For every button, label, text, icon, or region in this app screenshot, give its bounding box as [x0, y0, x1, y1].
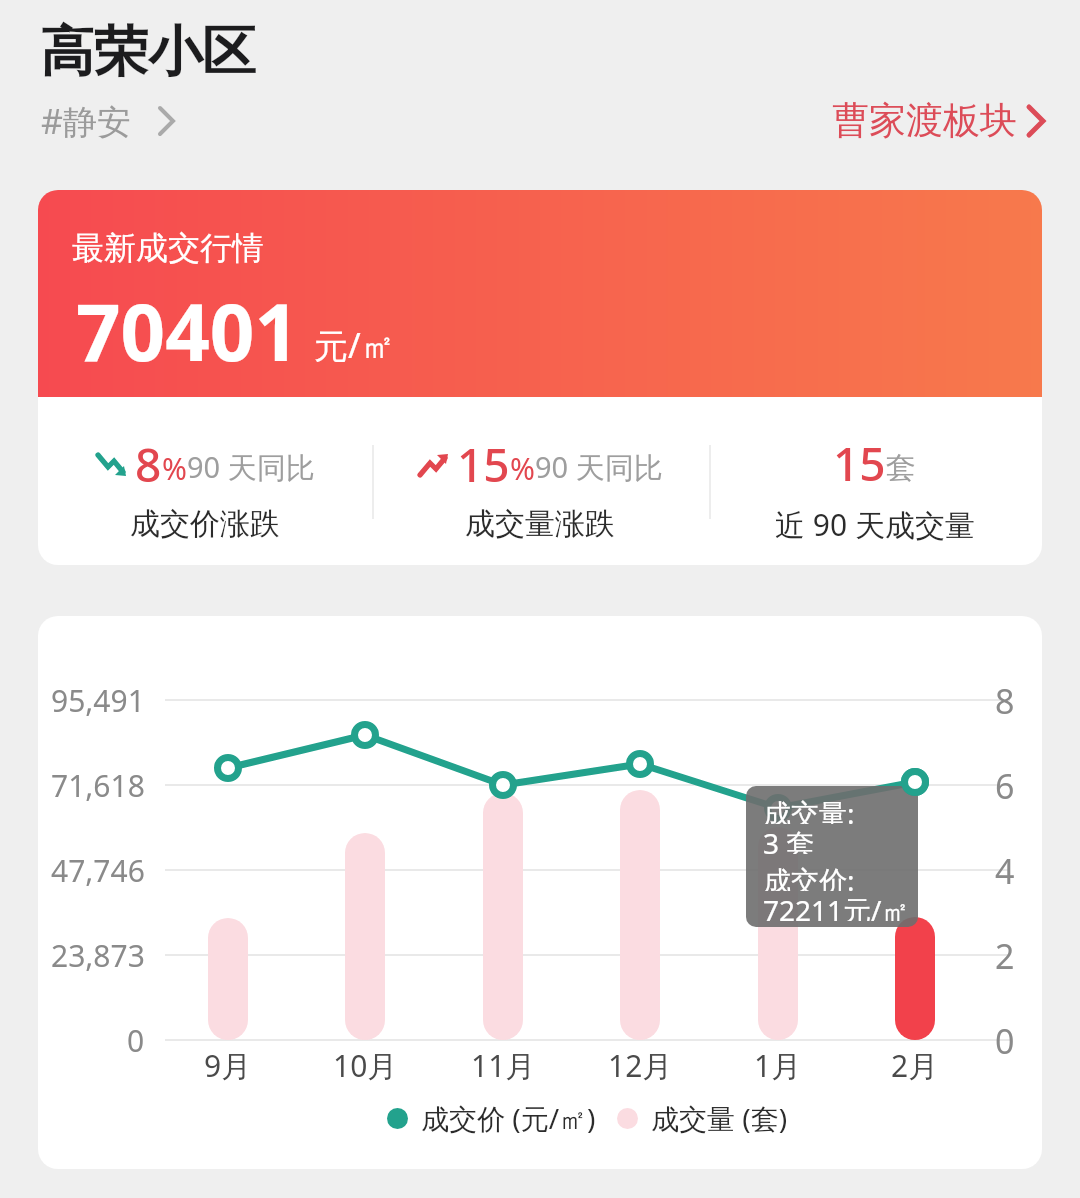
staticText: 成交价 (元/㎡) — [421, 1099, 596, 1137]
staticText: 高荣小区 — [40, 18, 256, 86]
staticText: 70401 — [76, 278, 300, 384]
button[interactable]: 8 — [38, 411, 372, 565]
staticText: 6 — [995, 763, 1015, 807]
staticText: 72211元/㎡ — [763, 891, 910, 921]
staticText: 90 天同比 — [187, 447, 315, 487]
button[interactable]: 最新成交行情 — [38, 190, 1042, 565]
staticText: 成交量 (套) — [651, 1099, 788, 1137]
staticText: 10月 — [333, 1045, 398, 1086]
staticText: % — [162, 448, 187, 489]
staticText: 最新成交行情 — [72, 228, 264, 268]
staticText: 8 — [135, 433, 162, 496]
staticText: #静安 — [41, 98, 131, 144]
staticText: 95,491 — [51, 680, 145, 721]
staticText: 曹家渡板块 — [832, 97, 1017, 144]
staticText: 8 — [995, 678, 1015, 722]
staticText: 成交量: — [763, 794, 855, 824]
staticText: 71,618 — [51, 765, 145, 806]
button[interactable]: 15 — [707, 411, 1042, 565]
staticText: 套 — [886, 449, 916, 487]
staticText: 2 — [995, 933, 1015, 977]
staticText: 12月 — [608, 1045, 673, 1086]
staticText: 90 天同比 — [535, 447, 663, 487]
staticText: 9月 — [204, 1045, 252, 1086]
staticText: 11月 — [471, 1045, 536, 1086]
staticText: 成交价: — [763, 861, 855, 891]
staticText: 15 — [457, 433, 510, 496]
staticText: 0 — [995, 1018, 1015, 1062]
button[interactable]: 95,491 — [38, 616, 1042, 1169]
staticText: 15 — [833, 432, 886, 495]
button[interactable]: 曹家渡板块 — [700, 96, 1043, 144]
staticText: % — [510, 448, 535, 489]
staticText: 2月 — [891, 1045, 939, 1086]
staticText: 近 90 天成交量 — [775, 504, 975, 545]
staticText: 4 — [995, 848, 1015, 892]
staticText: 47,746 — [51, 850, 145, 891]
staticText: 成交量涨跌 — [465, 505, 615, 543]
button[interactable]: 15 — [372, 411, 707, 565]
staticText: 元/㎡ — [314, 322, 395, 368]
staticText: 3 套 — [763, 824, 815, 854]
staticText: 23,873 — [51, 935, 145, 976]
staticText: 0 — [127, 1020, 145, 1061]
staticText: 1月 — [754, 1045, 802, 1086]
staticText: 成交价涨跌 — [130, 505, 280, 543]
